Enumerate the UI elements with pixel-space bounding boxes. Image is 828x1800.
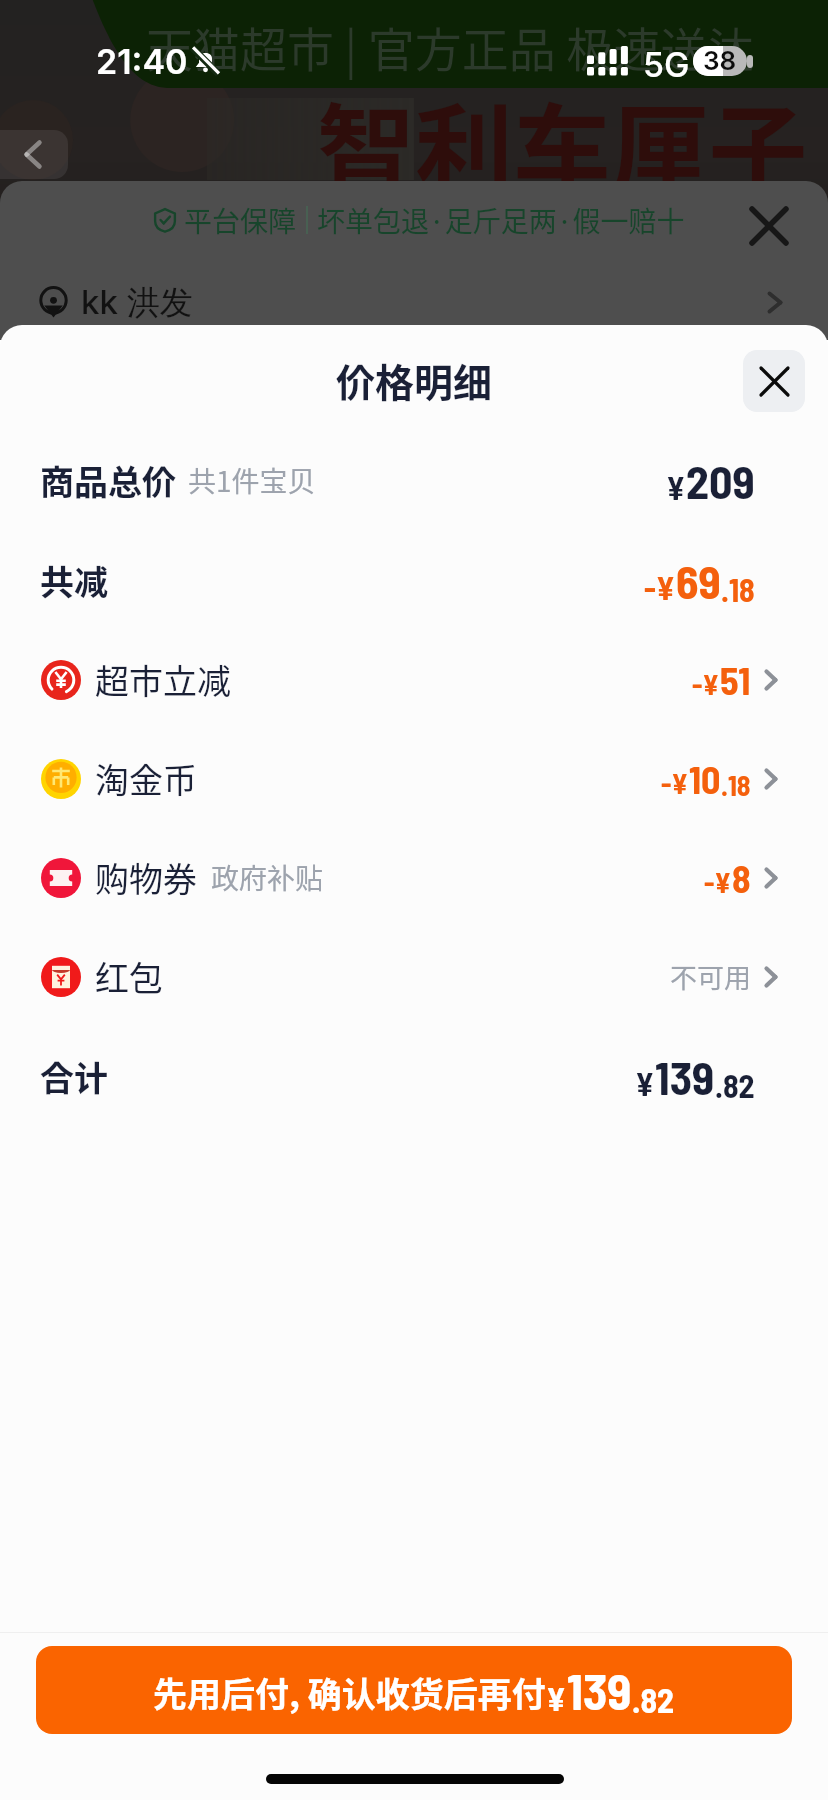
staticText: -¥ [661,766,689,800]
button[interactable]: 红包 [0,927,828,1026]
staticText: 209 [686,453,755,508]
staticText: 合计 [40,1052,108,1101]
staticText: .18 [721,768,751,802]
staticText: 38 [703,46,737,75]
staticText: -¥ [644,568,676,606]
staticText: ¥ [666,468,686,506]
button[interactable]: Dismiss banner [748,205,790,247]
staticText: 天猫超市 | 官方正品 极速送达 [146,12,755,80]
staticText: 超市立减 [95,655,231,704]
staticText: 淘金币 [95,754,197,803]
staticText: 平台保障 [184,200,297,241]
staticText: ¥ [546,1678,567,1718]
button[interactable]: 先用后付, 确认收货后再付 [36,1646,792,1734]
staticText: 价格明细 [336,352,493,408]
staticText: 139 [567,1660,632,1720]
staticText: 先用后付, 确认收货后再付 [153,1668,546,1717]
staticText: .82 [632,1679,675,1720]
staticText: 智利车厘子 [317,72,808,214]
staticText: 51 [720,657,751,703]
staticText: 69 [676,553,721,608]
button[interactable]: 购物券 [0,828,828,927]
staticText: 购物券 [95,853,197,902]
staticText: 21:40 [96,41,188,82]
staticText: kk 洪发 [81,282,193,324]
button[interactable]: Back [0,130,68,179]
staticText: 共减 [40,556,108,605]
staticText: 139 [655,1049,715,1104]
staticText: 5G [643,44,690,85]
button[interactable]: Close [743,350,805,412]
staticText: -¥ [692,667,720,701]
button[interactable]: 淘金币 [0,729,828,828]
staticText: -¥ [704,865,732,899]
staticText: .82 [715,1066,755,1104]
button[interactable]: 超市立减 [0,630,828,729]
staticText: 8 [732,855,751,901]
staticText: .18 [721,570,755,608]
staticText: ¥ [635,1064,655,1102]
staticText: 坏单包退·足斤足两·假一赔十 [317,200,685,241]
button[interactable]: kk 洪发 [0,265,828,340]
staticText: 10 [689,756,721,802]
staticText: 政府补贴 [211,857,324,898]
staticText: 商品总价 [40,456,176,505]
staticText: 不可用 [670,957,751,996]
staticText: 共1件宝贝 [188,460,316,501]
staticText: 红包 [95,952,163,1001]
